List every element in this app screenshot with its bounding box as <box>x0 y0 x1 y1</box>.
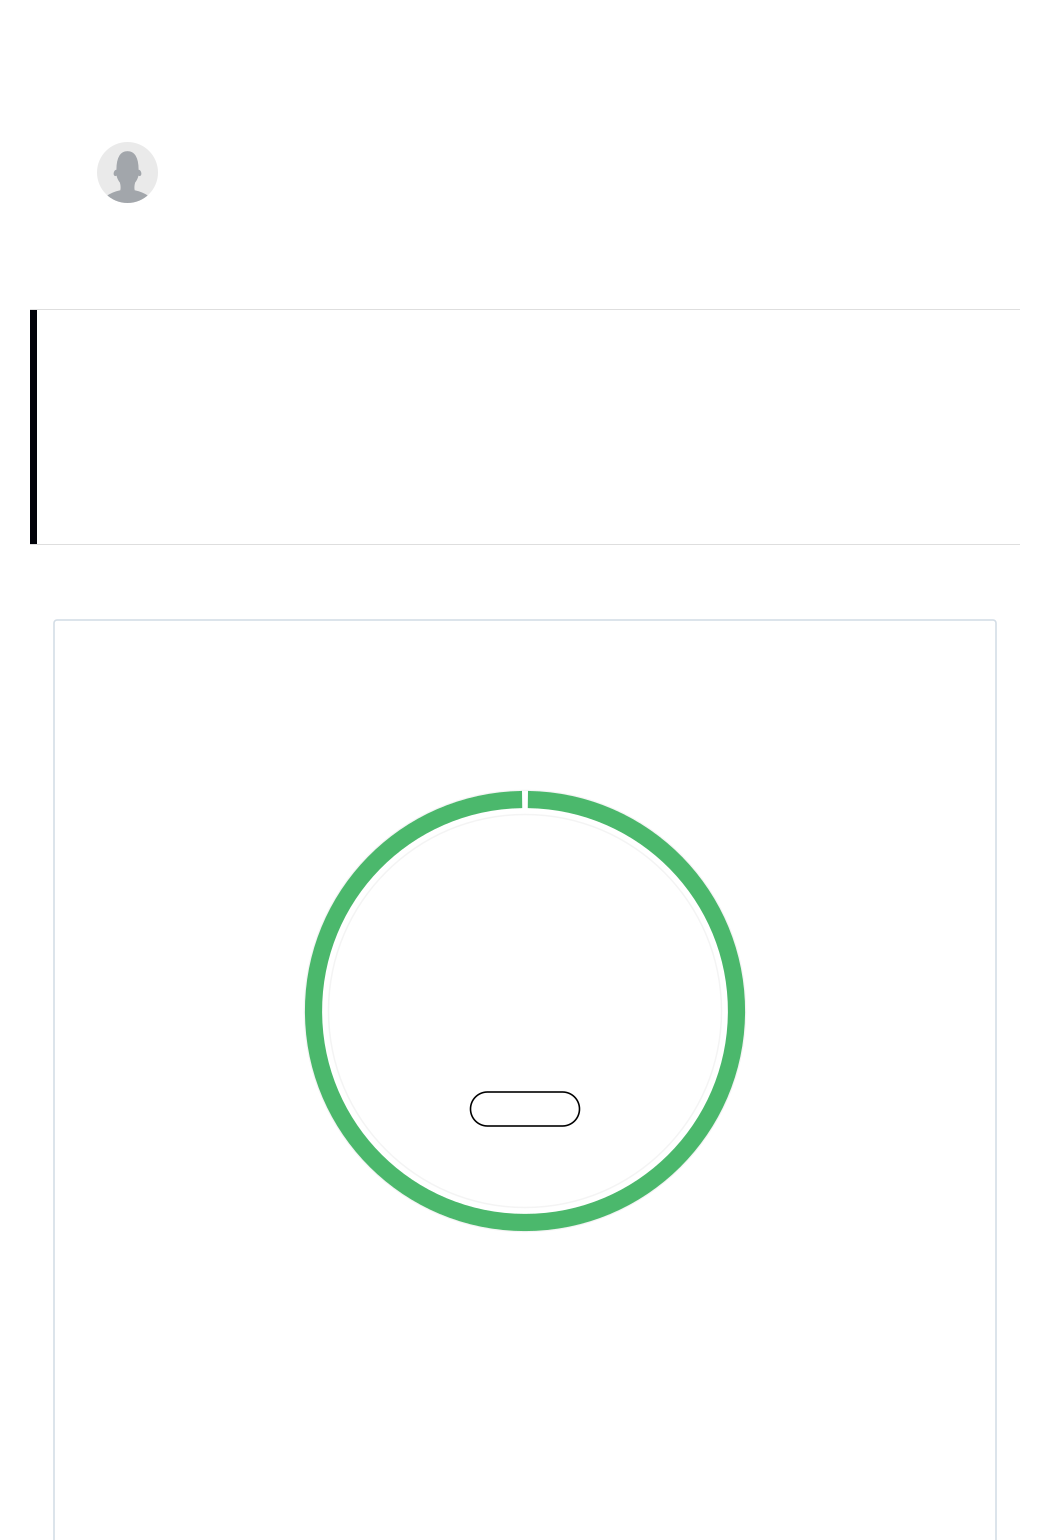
button[interactable]: Profile <box>97 142 158 203</box>
button[interactable]: Start <box>470 1092 579 1126</box>
